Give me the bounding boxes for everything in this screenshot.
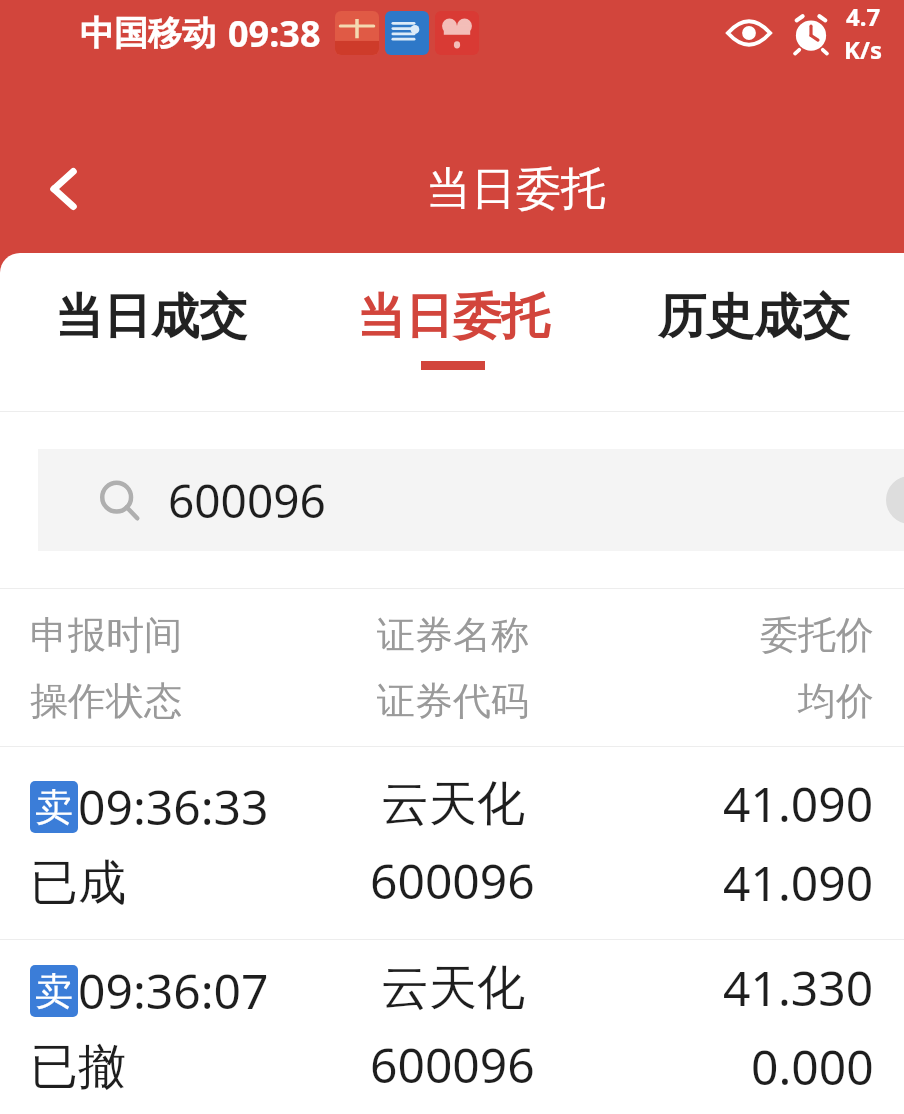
staticText: 历史成交	[658, 287, 850, 347]
staticText: 卖	[35, 967, 73, 1015]
staticText: 云天化	[381, 774, 525, 834]
staticText: 当日委托	[426, 161, 606, 218]
button[interactable]: 600096	[38, 449, 904, 551]
button[interactable]: 卖	[0, 940, 904, 1114]
button[interactable]: 当日委托	[302, 287, 603, 370]
staticText: 证券代码	[377, 677, 529, 725]
staticText: 09:38	[228, 9, 321, 58]
staticText: 09:36:07	[78, 958, 269, 1023]
staticText: 41.090	[723, 771, 874, 836]
staticText: 中国移动	[80, 12, 216, 55]
staticText: 09:36:33	[78, 774, 269, 839]
staticText: 委托价	[760, 611, 874, 659]
button[interactable]: 历史成交	[603, 287, 904, 370]
staticText: 均价	[798, 677, 874, 725]
button[interactable]: 卖	[0, 747, 904, 939]
staticText: 操作状态	[30, 677, 182, 725]
staticText: 证券名称	[377, 611, 529, 659]
staticText: 0.000	[751, 1034, 874, 1099]
staticText: 当日委托	[357, 287, 549, 347]
staticText: 600096	[168, 469, 326, 532]
button[interactable]: Back	[22, 146, 108, 232]
staticText: 云天化	[381, 958, 525, 1018]
button[interactable]: Clear	[886, 476, 904, 524]
staticText: 已撤	[30, 1037, 126, 1097]
staticText: 41.090	[723, 850, 874, 915]
staticText: 600096	[370, 848, 535, 913]
staticText: 当日成交	[55, 287, 247, 347]
staticText: K/s	[844, 33, 882, 66]
staticText: 41.330	[723, 955, 874, 1020]
staticText: 600096	[370, 1032, 535, 1097]
staticText: 卖	[35, 783, 73, 831]
staticText: 4.7	[846, 0, 881, 33]
staticText: 已成	[30, 853, 126, 913]
staticText: 申报时间	[30, 611, 182, 659]
button[interactable]: 当日成交	[0, 287, 302, 370]
